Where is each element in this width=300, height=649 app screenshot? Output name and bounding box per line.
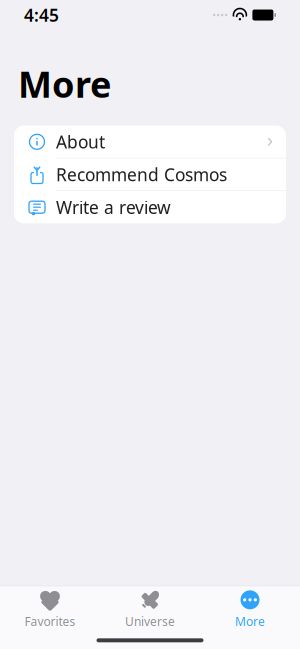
staticText: Favorites xyxy=(24,613,75,629)
staticText: About xyxy=(56,130,105,153)
staticText: 4:45 xyxy=(24,3,59,26)
button[interactable]: Write a review xyxy=(14,191,286,223)
staticText: Universe xyxy=(125,613,175,629)
button[interactable]: Universe xyxy=(100,583,200,633)
staticText: Write a review xyxy=(56,196,171,219)
button[interactable]: Recommend Cosmos xyxy=(14,158,286,191)
staticText: More xyxy=(235,613,265,629)
button[interactable]: More xyxy=(200,583,300,633)
staticText: More xyxy=(18,60,111,108)
button[interactable]: Favorites xyxy=(0,583,100,633)
button[interactable]: About xyxy=(14,126,286,158)
staticText: Recommend Cosmos xyxy=(56,163,227,186)
